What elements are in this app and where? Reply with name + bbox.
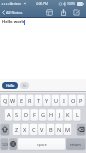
button[interactable]: X [21, 124, 29, 136]
staticText: All Notes [6, 10, 23, 15]
button[interactable]: V [38, 124, 46, 136]
button[interactable]: C [30, 124, 38, 136]
staticText: G [41, 111, 46, 119]
button[interactable]: Next keyboard [9, 138, 17, 150]
button[interactable]: G [39, 109, 47, 121]
staticText: O [71, 97, 76, 105]
button[interactable]: T [35, 95, 43, 107]
button[interactable]: Backspace [77, 124, 86, 136]
button[interactable]: J [56, 109, 64, 121]
staticText: 100% [67, 2, 76, 6]
staticText: R [28, 97, 32, 105]
staticText: Y [45, 97, 49, 105]
button[interactable]: Q [1, 95, 9, 107]
button[interactable]: Share [59, 7, 68, 18]
staticText: B [49, 126, 53, 134]
staticText: A [7, 111, 11, 119]
button[interactable]: Z [13, 124, 21, 136]
staticText: T [37, 97, 41, 105]
staticText: D [24, 111, 29, 119]
button[interactable]: W [9, 95, 17, 107]
staticText: P [79, 97, 83, 105]
button[interactable]: H [47, 109, 55, 121]
staticText: Verizon [10, 2, 22, 6]
staticText: Hello world [2, 19, 26, 25]
staticText: F [33, 111, 36, 119]
button[interactable]: New note [72, 7, 81, 18]
staticText: 4:06 PM [36, 2, 48, 6]
button[interactable]: I [60, 95, 68, 107]
staticText: H [49, 111, 54, 119]
button[interactable]: O [69, 95, 77, 107]
button[interactable]: U [52, 95, 60, 107]
button[interactable]: F [30, 109, 38, 121]
button[interactable]: hi [20, 82, 29, 89]
button[interactable]: R [26, 95, 34, 107]
button[interactable]: All Notes [0, 7, 26, 18]
button[interactable]: K [64, 109, 72, 121]
staticText: 123 [2, 142, 8, 147]
staticText: L [76, 111, 79, 119]
button[interactable]: D [22, 109, 30, 121]
button[interactable]: B [47, 124, 55, 136]
staticText: X [23, 126, 27, 134]
staticText: Z [15, 126, 19, 134]
button[interactable]: N [55, 124, 63, 136]
staticText: M [65, 126, 71, 134]
staticText: hi [23, 84, 26, 88]
button[interactable]: E [18, 95, 26, 107]
button[interactable]: P [77, 95, 85, 107]
staticText: U [54, 97, 59, 105]
button[interactable]: A [5, 109, 13, 121]
button[interactable]: Shift [1, 124, 10, 136]
button[interactable]: M [64, 124, 72, 136]
staticText: Hello [6, 83, 15, 88]
staticText: return [70, 142, 81, 147]
staticText: K [66, 111, 70, 119]
staticText: space [37, 142, 47, 147]
staticText: V [40, 126, 44, 134]
staticText: C [32, 126, 36, 134]
button[interactable]: Checklist [45, 7, 54, 18]
staticText: J [59, 111, 61, 119]
button[interactable]: Hello [2, 82, 18, 89]
button[interactable]: S [13, 109, 21, 121]
button[interactable]: Numbers and symbols [1, 138, 9, 150]
staticText: E [20, 97, 24, 105]
button[interactable]: space [18, 138, 65, 150]
staticText: S [15, 111, 19, 119]
staticText: N [57, 126, 62, 134]
staticText: I [63, 97, 65, 105]
button[interactable]: Y [43, 95, 51, 107]
staticText: W [10, 97, 16, 105]
button[interactable]: return [66, 138, 85, 150]
staticText: Q [3, 97, 8, 105]
button[interactable]: L [73, 109, 81, 121]
